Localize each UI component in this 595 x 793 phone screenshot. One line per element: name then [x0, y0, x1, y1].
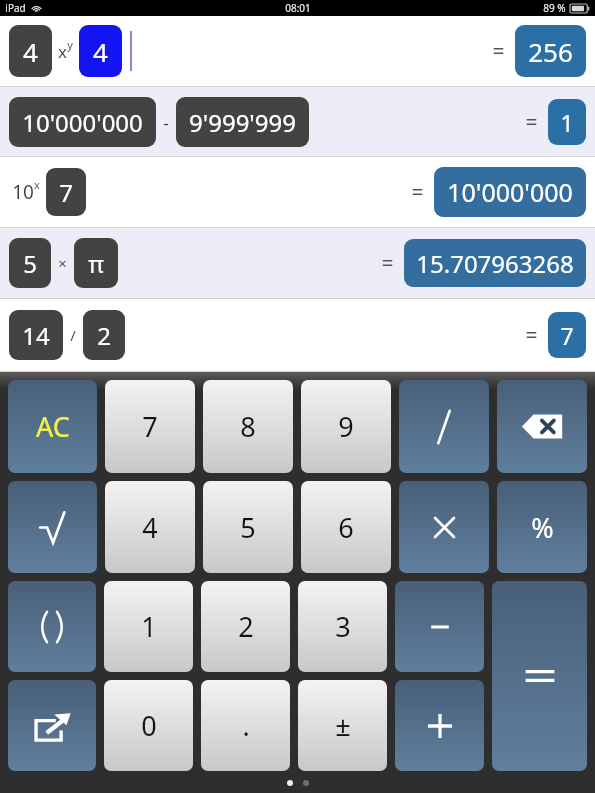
button[interactable]: 14 — [0, 299, 595, 371]
staticText: 5 — [240, 509, 256, 546]
staticText: x — [58, 40, 67, 63]
button[interactable]: 4 — [79, 25, 122, 77]
button[interactable]: 7 — [46, 168, 86, 216]
button[interactable]: Parentheses — [8, 581, 96, 672]
staticText: 10 — [12, 179, 34, 205]
staticText: AC — [36, 408, 70, 445]
button[interactable]: 7 — [548, 312, 586, 358]
staticText: 7 — [142, 408, 158, 445]
button[interactable]: Percent — [497, 481, 587, 573]
button[interactable]: 10'000'000 — [0, 87, 595, 156]
button[interactable]: Minus — [395, 581, 484, 672]
staticText: 7 — [59, 176, 73, 209]
staticText: 9'999'999 — [189, 106, 296, 139]
staticText: . — [242, 707, 250, 744]
button[interactable]: Multiply — [399, 481, 489, 573]
staticText: × — [58, 253, 67, 273]
button[interactable]: 10 — [0, 157, 595, 227]
staticText: - — [163, 111, 169, 134]
button[interactable]: Square root — [8, 481, 97, 573]
staticText: y — [67, 37, 73, 52]
staticText: / — [70, 325, 76, 345]
button[interactable]: 4 — [105, 481, 195, 573]
button[interactable]: 5 — [203, 481, 293, 573]
staticText: = — [381, 249, 394, 278]
staticText: = — [525, 321, 538, 350]
staticText: = — [492, 37, 505, 66]
staticText: x — [34, 177, 40, 192]
button[interactable]: 2 — [201, 581, 290, 672]
button[interactable]: 256 — [515, 25, 586, 77]
staticText: = — [525, 108, 538, 137]
button[interactable]: 3 — [298, 581, 387, 672]
button[interactable]: 0 — [104, 680, 193, 771]
staticText: 8 — [240, 408, 256, 445]
button[interactable]: All clear — [8, 380, 97, 473]
button[interactable]: π — [74, 238, 118, 288]
button[interactable]: 15.707963268 — [404, 239, 586, 287]
button[interactable]: 1 — [104, 581, 193, 672]
button[interactable]: 14 — [9, 310, 63, 360]
staticText: 0 — [141, 707, 157, 744]
button[interactable]: Plus — [395, 680, 484, 771]
staticText: 4 — [23, 34, 38, 69]
button[interactable]: Equals — [492, 581, 587, 771]
staticText: 89 % — [543, 1, 566, 15]
staticText: 5 — [23, 247, 37, 280]
staticText: 3 — [335, 608, 351, 645]
button[interactable]: Backspace — [497, 380, 587, 473]
button[interactable]: 10'000'000 — [9, 97, 156, 147]
staticText: 4 — [142, 509, 158, 546]
staticText: 2 — [238, 608, 254, 645]
button[interactable]: 10'000'000 — [434, 167, 586, 217]
button[interactable]: Divide — [399, 380, 489, 473]
button[interactable]: 8 — [203, 380, 293, 473]
staticText: π — [88, 247, 104, 280]
button[interactable]: 7 — [105, 380, 195, 473]
button[interactable]: 9'999'999 — [176, 97, 309, 147]
staticText: 10'000'000 — [22, 106, 143, 139]
button[interactable]: 4 — [9, 25, 52, 77]
button[interactable]: ± — [298, 680, 387, 771]
button[interactable]: 5 — [0, 228, 595, 298]
staticText: 14 — [22, 319, 50, 352]
staticText: 256 — [528, 34, 573, 69]
staticText: iPad — [5, 1, 26, 15]
button[interactable]: 2 — [83, 310, 125, 360]
staticText: 9 — [338, 408, 354, 445]
button[interactable]: 6 — [301, 481, 391, 573]
staticText: 08:01 — [285, 1, 311, 15]
button[interactable]: 1 — [548, 99, 586, 145]
staticText: 15.707963268 — [416, 247, 574, 280]
staticText: = — [411, 178, 424, 207]
staticText: 1 — [560, 107, 574, 138]
staticText: % — [531, 509, 554, 546]
button[interactable]: 5 — [9, 238, 51, 288]
staticText: 4 — [93, 34, 108, 69]
staticText: 1 — [141, 608, 157, 645]
staticText: ± — [335, 707, 351, 744]
staticText: 6 — [338, 509, 354, 546]
staticText: 2 — [97, 319, 111, 352]
button[interactable]: 4 — [0, 16, 595, 86]
staticText: 10'000'000 — [447, 175, 573, 209]
button[interactable]: 9 — [301, 380, 391, 473]
button[interactable]: . — [201, 680, 290, 771]
staticText: 7 — [560, 320, 574, 351]
button[interactable]: Share — [8, 680, 96, 771]
